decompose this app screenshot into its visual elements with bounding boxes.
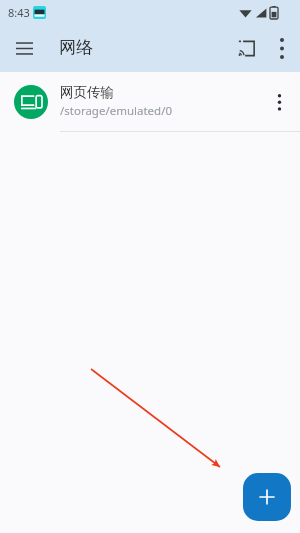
button[interactable]: More options bbox=[264, 30, 300, 66]
button[interactable]: Cast bbox=[228, 30, 264, 66]
button[interactable]: Item options bbox=[261, 84, 297, 120]
staticText: 8:43 bbox=[8, 5, 30, 20]
staticText: 网络 bbox=[59, 37, 93, 58]
staticText: 网页传输 bbox=[60, 84, 114, 101]
button[interactable]: 网页传输 bbox=[0, 72, 300, 131]
button[interactable]: Add bbox=[243, 473, 291, 521]
staticText: /storage/emulated/0 bbox=[60, 103, 173, 119]
button[interactable]: Navigation menu bbox=[6, 30, 42, 66]
